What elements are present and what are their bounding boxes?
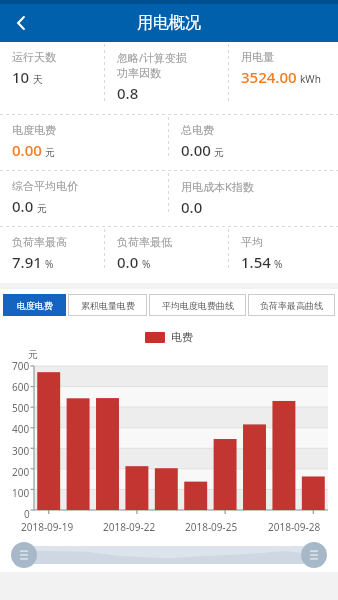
staticText: 0: [24, 507, 30, 521]
staticText: 0.8: [117, 83, 139, 103]
staticText: %: [274, 257, 283, 271]
staticText: 元: [37, 202, 47, 215]
staticText: 元: [214, 146, 224, 159]
staticText: 0.0: [181, 197, 203, 217]
staticText: 负荷率最高曲线: [260, 300, 323, 311]
staticText: 400: [12, 422, 30, 436]
staticText: 0.0: [117, 252, 139, 272]
staticText: 忽略/计算变损 功率因数: [117, 50, 188, 80]
staticText: %: [142, 257, 151, 271]
staticText: 负荷率最高: [12, 235, 67, 249]
staticText: 2018-09-25: [185, 520, 238, 534]
staticText: 2018-09-28: [268, 520, 321, 534]
staticText: 3524.00: [241, 67, 297, 87]
staticText: 0.00: [12, 140, 42, 160]
button[interactable]: 平均电度电费曲线: [149, 294, 246, 316]
staticText: %: [45, 257, 54, 271]
staticText: 1.54: [241, 252, 271, 272]
staticText: 平均: [241, 235, 263, 249]
staticText: 500: [12, 401, 30, 415]
staticText: 元: [45, 146, 55, 159]
button[interactable]: 累积电量电费: [68, 294, 147, 316]
staticText: 用电概况: [137, 13, 201, 33]
staticText: 0.00: [181, 140, 211, 160]
staticText: 天: [33, 73, 43, 86]
staticText: 7.91: [12, 252, 42, 272]
staticText: 用电成本K指数: [181, 179, 254, 194]
staticText: 2018-09-22: [103, 520, 156, 534]
staticText: 700: [12, 359, 30, 373]
staticText: 电度电费: [17, 300, 53, 311]
staticText: 300: [12, 444, 30, 458]
staticText: 运行天数: [12, 50, 56, 64]
staticText: 综合平均电价: [12, 179, 78, 193]
staticText: 600: [12, 380, 30, 394]
staticText: 2018-09-19: [21, 520, 74, 534]
staticText: 200: [12, 465, 30, 479]
staticText: 10: [12, 67, 30, 87]
staticText: 元: [28, 348, 38, 361]
staticText: 用电量: [241, 50, 274, 64]
staticText: 电费: [171, 330, 193, 344]
staticText: 总电费: [181, 123, 214, 137]
button[interactable]: 电度电费: [3, 294, 66, 316]
staticText: 0.0: [12, 196, 34, 216]
staticText: 累积电量电费: [81, 300, 135, 311]
staticText: kWh: [300, 72, 321, 86]
button[interactable]: 负荷率最高曲线: [248, 294, 335, 316]
staticText: 100: [12, 486, 30, 500]
staticText: 电度电费: [12, 123, 56, 137]
button[interactable]: Chart range slider: [24, 546, 314, 564]
staticText: 负荷率最低: [117, 235, 172, 249]
staticText: 平均电度电费曲线: [162, 300, 234, 311]
button[interactable]: Back: [0, 4, 42, 42]
